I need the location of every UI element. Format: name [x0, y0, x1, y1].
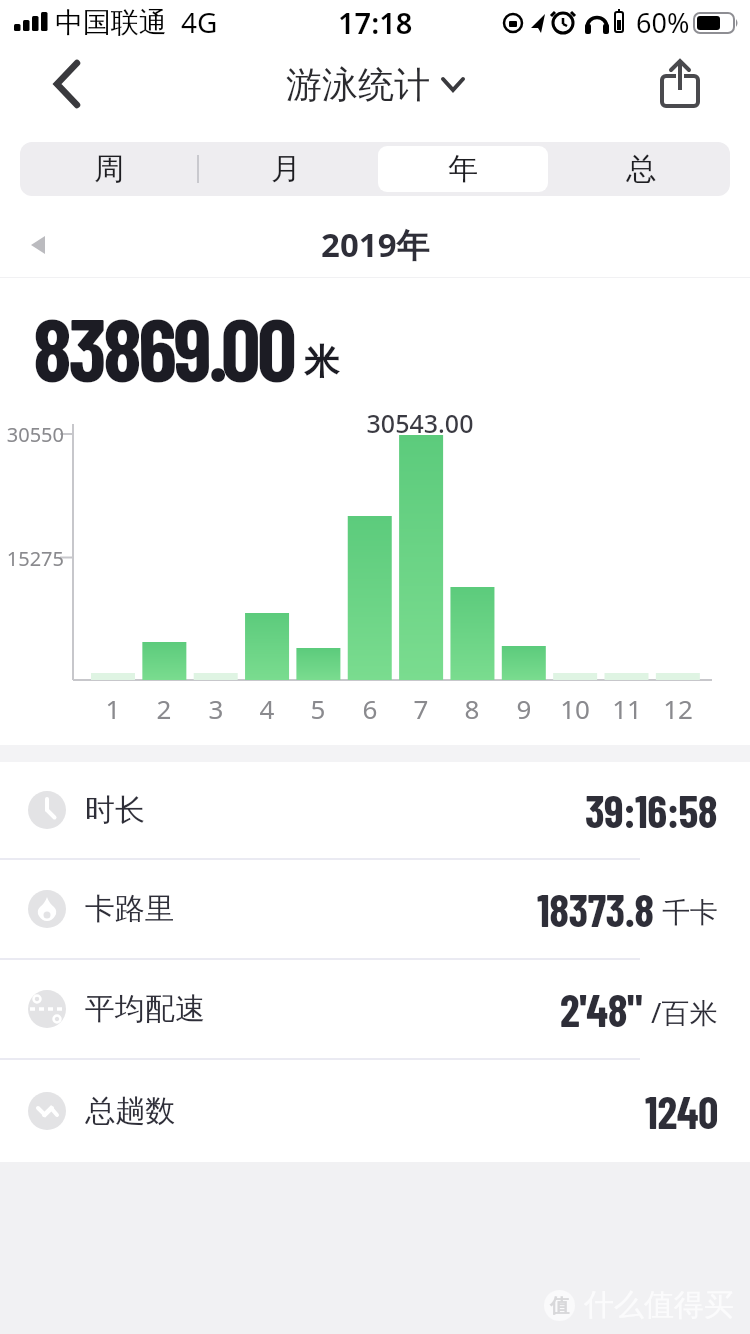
staticText: 39:16:58: [585, 783, 718, 837]
staticText: 总趟数: [85, 1092, 175, 1130]
button[interactable]: 年: [378, 146, 548, 192]
staticText: 4G: [181, 3, 218, 41]
staticText: 总: [626, 150, 656, 188]
staticText: 83869.00: [33, 294, 294, 400]
staticText: 1: [83, 691, 143, 726]
staticText: 30550: [2, 421, 64, 448]
staticText: 4: [237, 691, 297, 726]
staticText: 18373.8: [537, 882, 654, 936]
staticText: 卡路里: [85, 890, 175, 928]
staticText: 6: [340, 691, 400, 726]
staticText: 平均配速: [85, 990, 205, 1028]
staticText: 15275: [2, 545, 64, 572]
staticText: 60%: [636, 4, 690, 41]
button[interactable]: 平均配速: [0, 960, 750, 1058]
staticText: 时长: [85, 791, 145, 829]
staticText: 17:18: [338, 3, 413, 42]
staticText: 12: [648, 691, 708, 726]
staticText: 什么值得买: [584, 1286, 734, 1324]
staticText: 8: [442, 691, 502, 726]
staticText: 周: [94, 150, 124, 188]
staticText: 9: [494, 691, 554, 726]
staticText: 10: [545, 691, 605, 726]
staticText: 千卡: [662, 895, 718, 930]
staticText: 11: [597, 691, 657, 726]
button[interactable]: 周: [24, 146, 193, 192]
staticText: 7: [391, 691, 451, 726]
staticText: /百米: [651, 993, 718, 1031]
staticText: 游泳统计: [286, 62, 430, 107]
button[interactable]: 总: [556, 146, 726, 192]
staticText: 中国联通: [55, 5, 167, 40]
staticText: 2: [134, 691, 194, 726]
staticText: 1240: [645, 1084, 718, 1138]
staticText: 3: [186, 691, 246, 726]
button[interactable]: 总趟数: [0, 1060, 750, 1162]
button[interactable]: 卡路里: [0, 860, 750, 958]
button[interactable]: [40, 56, 96, 112]
staticText: 值: [550, 1294, 569, 1318]
staticText: 5: [288, 691, 348, 726]
button[interactable]: 时长: [0, 762, 750, 858]
staticText: 月: [271, 150, 301, 188]
staticText: 2'48": [560, 982, 643, 1036]
staticText: 2019年: [321, 222, 430, 267]
staticText: 年: [448, 150, 478, 188]
button[interactable]: 游泳统计: [286, 62, 464, 107]
staticText: 30543.00: [350, 406, 490, 440]
button[interactable]: [652, 56, 708, 112]
staticText: 米: [304, 340, 339, 384]
button[interactable]: 月: [201, 146, 370, 192]
